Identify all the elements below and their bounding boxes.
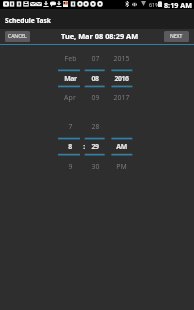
staticText: AM [116,142,127,151]
button[interactable]: 08 [78,72,112,85]
staticText: 7 [68,122,73,131]
staticText: 8:19 AM [164,0,192,10]
staticText: 2016 [114,74,129,83]
button[interactable]: AM [104,140,138,153]
button[interactable]: Mar [53,72,87,85]
staticText: 07 [91,54,100,63]
staticText: NEXT [170,33,183,40]
button[interactable]: PM [104,160,138,173]
button[interactable]: 2016 [104,72,138,85]
staticText: 2017 [113,93,130,102]
button[interactable]: 8 [53,140,87,153]
button[interactable]: 2015 [104,52,138,65]
staticText: Tue, Mar 08 08:29 AM [61,31,139,41]
button[interactable]: 29 [78,140,112,153]
button[interactable]: 9 [53,160,87,173]
button[interactable]: : [67,140,101,153]
staticText: 2015 [113,54,130,63]
button[interactable]: CANCEL [5,31,30,42]
staticText: PM [116,162,127,171]
staticText: Mar [64,74,77,83]
staticText: : [83,142,85,151]
button[interactable]: Feb [53,52,87,65]
staticText: Apr [64,93,76,102]
button[interactable]: 09 [78,91,112,104]
staticText: Schedule Task [5,16,51,25]
staticText: 8 [68,142,72,151]
staticText: Feb [64,54,77,63]
staticText: 08 [91,74,99,83]
button[interactable]: 30 [78,160,112,173]
staticText: 28 [91,122,100,131]
button[interactable]: Apr [53,91,87,104]
button[interactable]: 07 [78,52,112,65]
staticText: CANCEL [8,33,27,40]
staticText: 9 [68,162,73,171]
staticText: 61% [149,1,160,8]
staticText: 30 [91,162,100,171]
button[interactable]: NEXT [164,31,189,42]
staticText: 09 [91,93,100,102]
button[interactable]: 7 [53,120,87,133]
staticText: 29 [91,142,99,151]
other: Bluetooth [125,1,129,7]
button[interactable]: 2017 [104,91,138,104]
button[interactable]: 28 [78,120,112,133]
